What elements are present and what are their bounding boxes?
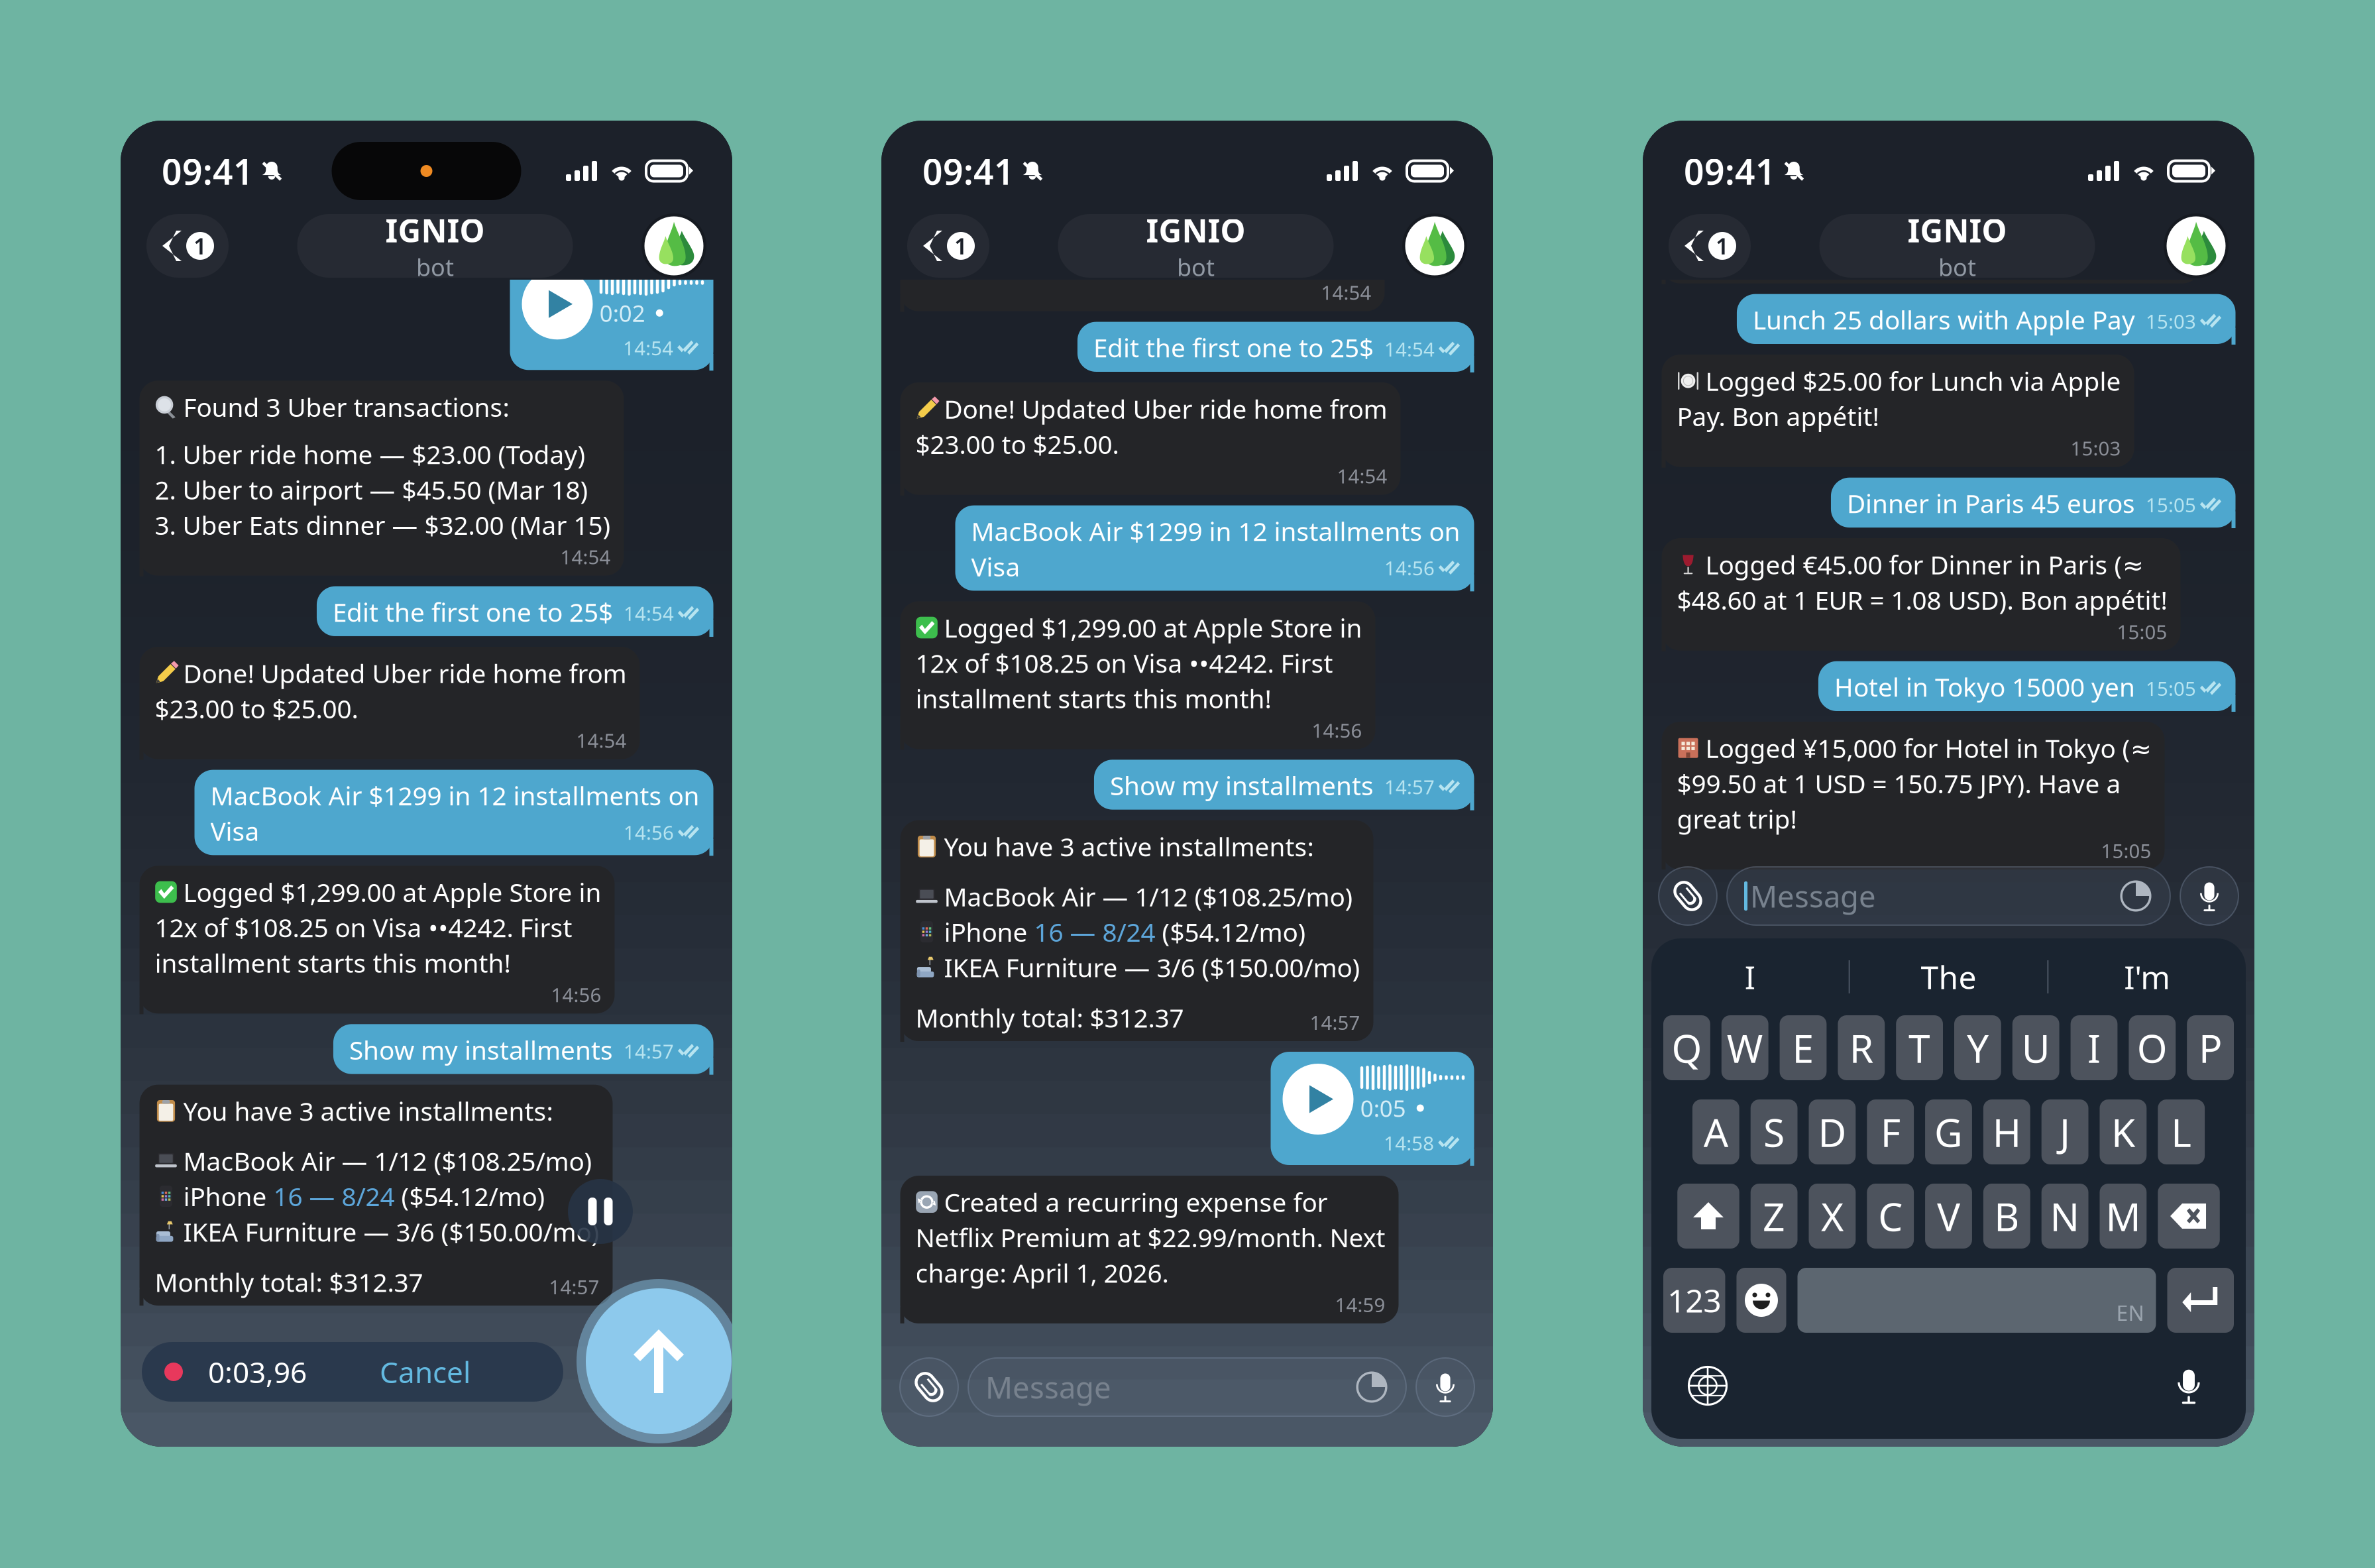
- button[interactable]: Attach file: [900, 1358, 958, 1416]
- staticText: V: [1937, 1190, 1960, 1242]
- staticText: iPhone: [183, 1179, 273, 1213]
- button[interactable]: Shift: [1677, 1184, 1739, 1249]
- button[interactable]: Z: [1751, 1184, 1797, 1249]
- staticText: 3. Uber Eats dinner — $32.00 (Mar 15): [155, 508, 611, 542]
- staticText: N: [2050, 1190, 2080, 1242]
- staticText: Dinner in Paris 45 euros: [1847, 486, 2135, 520]
- button[interactable]: F: [1867, 1099, 1914, 1164]
- button[interactable]: S: [1751, 1099, 1797, 1164]
- button[interactable]: T: [1896, 1015, 1943, 1080]
- staticText: B: [1994, 1190, 2019, 1242]
- button[interactable]: D: [1809, 1099, 1856, 1164]
- button[interactable]: Back: [1669, 214, 1751, 278]
- staticText: Cancel: [380, 1352, 470, 1391]
- staticText: bot: [416, 251, 454, 283]
- staticText: 14:57: [1384, 774, 1435, 800]
- button[interactable]: Attach file: [1659, 867, 1717, 925]
- staticText: 15:05: [2146, 492, 2196, 518]
- staticText: 1: [193, 231, 207, 261]
- button[interactable]: Back: [907, 214, 989, 278]
- staticText: 09:41: [162, 148, 254, 194]
- button[interactable]: Profile: [2164, 213, 2229, 278]
- staticText: 14:56: [624, 819, 674, 845]
- staticText: A: [1704, 1106, 1728, 1158]
- staticText: MacBook Air — 1/12 ($108.25/mo): [944, 879, 1353, 913]
- staticText: 15:03: [2071, 435, 2121, 461]
- staticText: Logged $25.00 for Lunch via Apple: [1705, 364, 2121, 398]
- button[interactable]: Dictation: [2168, 1365, 2210, 1407]
- button[interactable]: J: [2041, 1099, 2088, 1164]
- staticText: Q: [1672, 1022, 1702, 1074]
- staticText: MacBook Air — 1/12 ($108.25/mo): [183, 1144, 592, 1178]
- button[interactable]: Delete: [2158, 1184, 2220, 1249]
- staticText: 16 — 8/24: [1034, 915, 1155, 949]
- staticText: installment starts this month!: [915, 681, 1271, 715]
- button[interactable]: A: [1692, 1099, 1739, 1164]
- staticText: 16 — 8/24: [273, 1179, 395, 1213]
- staticText: 14:58: [1384, 1130, 1434, 1156]
- staticText: 0:05: [1360, 1093, 1406, 1123]
- button[interactable]: Profile: [1402, 213, 1467, 278]
- button[interactable]: Space: [1797, 1268, 2156, 1333]
- staticText: $23.00 to $25.00.: [915, 427, 1119, 461]
- staticText: Monthly total: $312.37: [915, 1001, 1184, 1035]
- button[interactable]: Return: [2167, 1268, 2234, 1333]
- staticText: 0:03,96: [208, 1352, 307, 1391]
- button[interactable]: B: [1983, 1184, 2030, 1249]
- staticText: IGNIO: [1907, 209, 2007, 251]
- button[interactable]: C: [1867, 1184, 1914, 1249]
- staticText: Netflix Premium at $22.99/month. Next: [915, 1220, 1385, 1254]
- button[interactable]: 123: [1663, 1268, 1725, 1333]
- button[interactable]: Q: [1663, 1015, 1710, 1080]
- button[interactable]: Switch keyboard: [1687, 1365, 1728, 1406]
- button[interactable]: Record voice message: [2180, 867, 2238, 925]
- staticText: 14:54: [576, 727, 627, 753]
- button[interactable]: Record voice message: [1416, 1358, 1474, 1416]
- staticText: 1: [954, 231, 967, 261]
- button[interactable]: H: [1983, 1099, 2030, 1164]
- staticText: iPhone: [944, 915, 1034, 949]
- button[interactable]: M: [2100, 1184, 2147, 1249]
- staticText: EN: [2116, 1299, 2144, 1327]
- staticText: bot: [1177, 251, 1215, 283]
- button[interactable]: R: [1838, 1015, 1885, 1080]
- staticText: 15:05: [2117, 619, 2167, 645]
- button[interactable]: G: [1925, 1099, 1972, 1164]
- button[interactable]: N: [2041, 1184, 2088, 1249]
- button[interactable]: P: [2187, 1015, 2234, 1080]
- staticText: T: [1909, 1022, 1930, 1074]
- staticText: Found 3 Uber transactions:: [183, 390, 509, 424]
- staticText: 14:54: [1321, 279, 1371, 305]
- button[interactable]: V: [1925, 1184, 1972, 1249]
- staticText: 14:54: [623, 335, 673, 361]
- button[interactable]: I: [2071, 1015, 2117, 1080]
- staticText: 14:54: [1384, 336, 1435, 362]
- button[interactable]: W: [1721, 1015, 1768, 1080]
- button[interactable]: Send: [577, 1279, 741, 1443]
- button[interactable]: Profile: [641, 213, 706, 278]
- button[interactable]: U: [2012, 1015, 2059, 1080]
- button[interactable]: X: [1809, 1184, 1856, 1249]
- button[interactable]: IGNIO: [1819, 214, 2095, 278]
- staticText: D: [1818, 1106, 1846, 1158]
- staticText: Done! Updated Uber ride home from: [183, 656, 627, 690]
- button[interactable]: L: [2158, 1099, 2205, 1164]
- button[interactable]: Back: [146, 214, 229, 278]
- staticText: L: [2171, 1106, 2192, 1158]
- button[interactable]: Emoji: [1737, 1268, 1786, 1333]
- button[interactable]: Pause recording: [568, 1179, 633, 1244]
- button[interactable]: K: [2100, 1099, 2147, 1164]
- staticText: ($54.12/mo): [395, 1179, 545, 1213]
- staticText: bot: [1938, 251, 1976, 283]
- staticText: 0:02: [600, 298, 645, 328]
- button[interactable]: O: [2129, 1015, 2176, 1080]
- button[interactable]: E: [1780, 1015, 1827, 1080]
- button[interactable]: Y: [1954, 1015, 2001, 1080]
- staticText: Edit the first one to 25$: [333, 595, 613, 629]
- staticText: 14:56: [1384, 555, 1435, 581]
- button[interactable]: IGNIO: [1058, 214, 1334, 278]
- button[interactable]: IGNIO: [297, 214, 573, 278]
- staticText: W: [1727, 1022, 1763, 1074]
- staticText: 12x of $108.25 on Visa ••4242. First: [915, 646, 1333, 680]
- staticText: $48.60 at 1 EUR = 1.08 USD). Bon appétit…: [1677, 583, 2167, 617]
